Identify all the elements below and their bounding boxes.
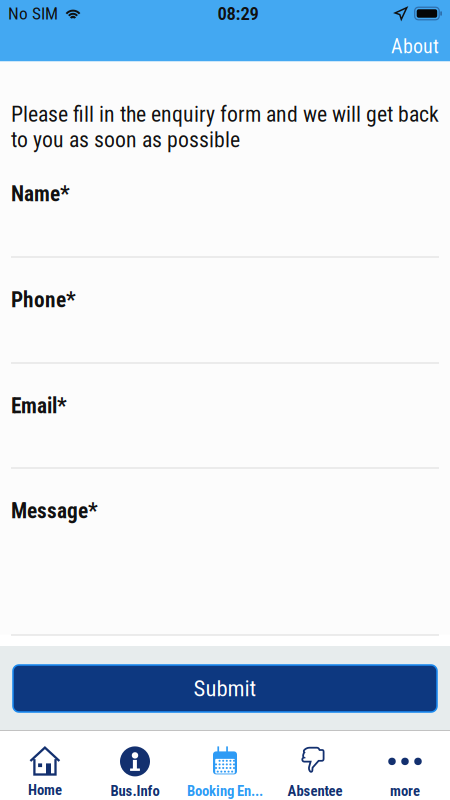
staticText: About xyxy=(391,35,439,58)
staticText: Phone* xyxy=(11,287,76,312)
staticText: Submit xyxy=(193,675,256,702)
staticText: more xyxy=(390,782,420,800)
staticText: Bus.Info xyxy=(110,782,159,800)
button[interactable]: Absentee xyxy=(270,730,360,800)
staticText: Email* xyxy=(11,393,67,418)
staticText: Home xyxy=(28,781,62,799)
button[interactable]: Submit xyxy=(0,646,450,730)
staticText: Please fill in the enquiry form and we w… xyxy=(11,101,439,152)
button[interactable]: Bus.Info xyxy=(90,730,180,800)
staticText: Booking En... xyxy=(187,782,263,800)
button[interactable]: more xyxy=(360,730,450,800)
button[interactable]: About xyxy=(381,31,449,68)
button[interactable]: Booking En... xyxy=(180,730,270,800)
staticText: No SIM xyxy=(8,3,58,24)
staticText: Message* xyxy=(11,498,98,523)
staticText: Name* xyxy=(11,181,70,206)
staticText: 08:29 xyxy=(218,3,259,24)
staticText: Absentee xyxy=(287,782,342,800)
button[interactable]: Home xyxy=(0,730,90,800)
